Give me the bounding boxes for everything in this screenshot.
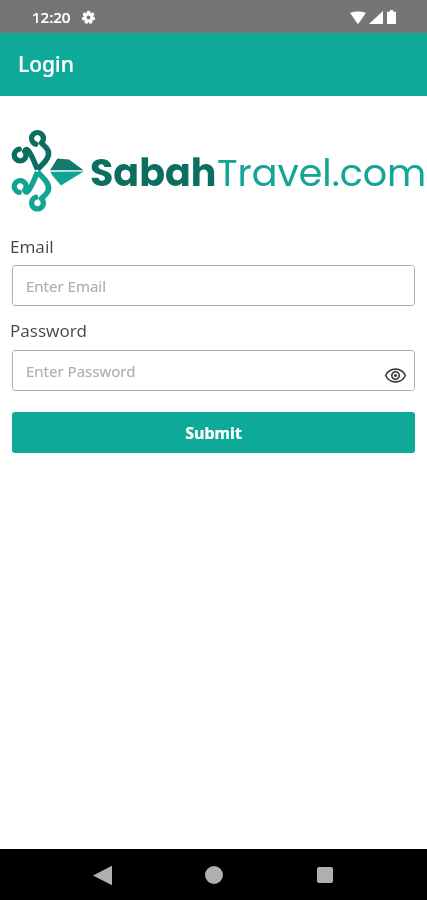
button[interactable]: Enter Email [12, 265, 415, 306]
staticText: Enter Email [26, 276, 107, 296]
staticText: Password [10, 319, 87, 342]
staticText: Travel.com [217, 146, 427, 199]
staticText: Submit [185, 422, 242, 444]
staticText: Login [18, 50, 74, 79]
staticText: Enter Password [26, 361, 136, 381]
button[interactable]: Submit [12, 412, 415, 453]
button[interactable]: Enter Password [12, 350, 415, 391]
button[interactable]: Home [190, 851, 238, 899]
staticText: Email [10, 235, 54, 258]
button[interactable]: Recents [301, 851, 349, 899]
staticText: 12:20 [32, 7, 71, 27]
button[interactable]: Show password [380, 360, 410, 390]
button[interactable]: Back [78, 851, 126, 899]
staticText: Sabah [90, 146, 217, 199]
